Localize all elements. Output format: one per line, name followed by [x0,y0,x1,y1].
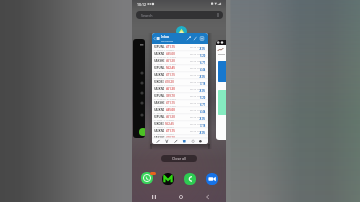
staticText: 1 094:1 1 2.3481 [154,111,175,114]
button[interactable]: SAIKNI [152,51,208,58]
staticText: SIKOSI [154,122,164,126]
staticText: 6.71 [200,61,206,65]
staticText: 8. 7125:77 8 7.059 [154,55,176,58]
staticText: SAIKNI [154,108,165,112]
staticText: 5.20 [200,96,206,100]
staticText: SAIKNI [154,129,165,133]
staticText: 20:13 01:2:4 [190,80,205,83]
staticText: Search [141,13,153,18]
button[interactable]: SAIKNI [152,72,208,79]
button[interactable]: SAKSHI [152,58,208,65]
button[interactable]: SAKSHI [152,135,208,138]
button[interactable]: Back [203,192,212,201]
staticText: 20:13 01:2:3 [190,45,205,48]
staticText: 3 2204 1 7.4088 [154,118,174,121]
staticText: SAIKNI [154,87,165,91]
button[interactable]: Search [136,11,223,19]
staticText: SIPUNL [154,94,165,98]
button[interactable]: SAIKNI [152,128,208,135]
staticText: 389.70 [166,94,175,98]
button[interactable]: Inbox [152,33,208,144]
staticText: SIPUNL [154,45,165,49]
staticText: 8. 7125:77 8 7.059 [154,139,176,142]
staticText: 4.44 [200,68,206,72]
staticText: 20:13 02:1:3 [190,87,205,90]
staticText: -8.05 [199,131,206,135]
button[interactable]: SIPUNL [152,93,208,100]
button[interactable]: Video call [205,172,218,185]
staticText: 445.00 [166,108,175,112]
button[interactable]: Close all [161,155,197,162]
staticText: 20:13 01:2:4 [190,108,205,111]
staticText: SIPUNL [154,115,165,119]
staticText: 5.20 [200,138,206,141]
staticText: Inbox [161,35,170,39]
staticText: 8. 7125:77 8 7.059 [154,97,176,100]
staticText: 3.18 [200,124,206,128]
staticText: SAKSHI [154,136,165,139]
staticText: 1 08:24 1 2.3487 [154,125,174,128]
staticText: SAIKNI [154,52,165,56]
staticText: 1 08:24 1 2.3487 [154,83,174,86]
staticText: 562.45 [166,66,175,70]
staticText: SIPUNL [154,66,165,70]
staticText: SAKSHI [154,101,165,105]
staticText: 20:13 02:1:3 [190,115,205,118]
staticText: 20:13 02:1:3 [190,59,205,62]
button[interactable]: Phone [183,172,196,185]
button[interactable]: SIKOSI [152,121,208,128]
staticText: -8.05 [199,117,206,121]
staticText: -8.05 [199,47,206,51]
staticText: 20:13 01:5:2 [190,94,205,97]
button[interactable]: SAIKNI [152,86,208,93]
staticText: 1 08:24 1 2.3487 [154,132,174,135]
button[interactable]: SAKSHI [152,100,208,107]
button[interactable]: SIPUNL [152,65,208,72]
staticText: 20:13 01:5:2 [190,66,205,69]
staticText: 471.15 [166,73,175,77]
button[interactable]: Recents [149,192,158,201]
staticText: 5.20 [200,54,206,58]
staticText: 461.30 [166,87,175,91]
staticText: 445.00 [166,52,175,56]
staticText: 20:13 01:2:3 [190,101,205,104]
staticText: 471.15 [166,45,175,49]
staticText: 461.30 [166,115,175,119]
staticText: 20:13 01:5:2 [190,122,205,125]
staticText: SAIKNI [154,73,165,77]
button[interactable]: WhatsApp [141,172,154,185]
staticText: Close all [172,156,186,161]
staticText: 410.20 [165,80,174,84]
staticText: 10:12 [137,2,146,7]
other: App icon [176,26,187,37]
staticText: 28 unread [161,39,173,42]
staticText: 1 094:1 1 2.3481 [154,69,175,72]
staticText: 410.20 [166,136,175,139]
button[interactable] [133,39,145,138]
button[interactable]: Home [176,192,185,201]
staticText: -8.05 [199,75,206,79]
staticText: 3.18 [200,82,206,86]
button[interactable] [216,40,226,140]
staticText: 471.15 [166,129,175,133]
staticText: -8.05 [199,89,206,93]
staticText: 1 70221 7 1 2.086 [154,62,176,65]
button[interactable]: SIPUNL [152,114,208,121]
staticText: 1 08:24 1 2.3487 [154,90,174,93]
button[interactable]: SAIKNI [152,107,208,114]
staticText: SIKOSI [154,80,164,84]
staticText: 20:13 01:2:3 [190,73,205,76]
staticText: 20:13 01:2:3 [190,129,205,132]
staticText: 1 08:24 1 2.3487 [154,48,174,51]
staticText: 461.30 [166,59,175,63]
staticText: 562.45 [165,122,174,126]
button[interactable]: SIPUNL [152,44,208,51]
button[interactable]: SIKOSI [152,79,208,86]
button[interactable]: Mail [161,172,174,185]
staticText: 3 2204 1 7.4088 [154,76,174,79]
staticText: 20:13 01:2:4 [190,136,205,139]
staticText: 1 70221 7 1 2.086 [154,104,176,107]
staticText: SAKSHI [154,59,165,63]
staticText: 20:13 01:2:4 [190,52,205,55]
staticText: 6.71 [200,103,206,107]
